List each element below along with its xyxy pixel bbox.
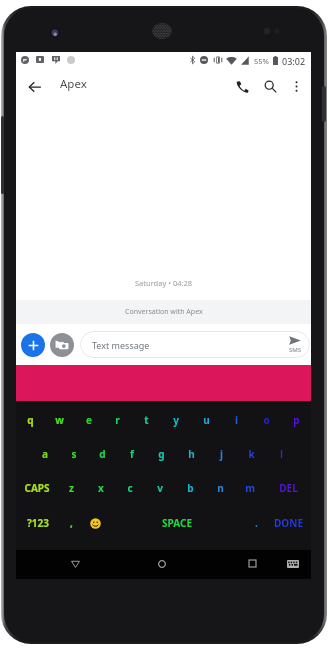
button[interactable]: . — [247, 506, 265, 540]
button[interactable]: e — [74, 403, 103, 437]
button[interactable]: Emoji — [83, 506, 107, 540]
button[interactable]: Back — [54, 550, 96, 579]
button[interactable]: w — [45, 403, 74, 437]
button[interactable]: a — [30, 437, 59, 471]
button[interactable]: DONE — [265, 506, 311, 540]
staticText: CAPS — [24, 481, 50, 495]
staticText: o — [263, 413, 270, 427]
button[interactable]: q — [16, 403, 45, 437]
staticText: h — [188, 447, 195, 461]
button[interactable]: , — [59, 506, 83, 540]
staticText: z — [69, 481, 74, 495]
button[interactable]: v — [145, 471, 175, 505]
button[interactable]: Add attachment — [21, 333, 45, 357]
staticText: , — [70, 516, 73, 530]
button[interactable]: ?123 — [16, 506, 59, 540]
staticText: b — [187, 481, 194, 495]
staticText: 55% — [254, 56, 269, 66]
button[interactable]: j — [206, 437, 236, 471]
staticText: j — [220, 447, 223, 461]
button[interactable]: n — [205, 471, 235, 505]
staticText: e — [86, 413, 92, 427]
button[interactable]: z — [57, 471, 86, 505]
staticText: f — [130, 447, 134, 461]
button[interactable]: DEL — [265, 471, 311, 505]
staticText: r — [115, 413, 120, 427]
staticText: Conversation with Apex — [125, 307, 203, 317]
button[interactable]: d — [88, 437, 117, 471]
button[interactable]: y — [161, 403, 191, 437]
staticText: SMS — [289, 346, 302, 354]
staticText: m — [245, 481, 255, 495]
staticText: i — [235, 413, 238, 427]
staticText: t — [144, 413, 149, 427]
button[interactable]: SPACE — [107, 506, 247, 540]
button[interactable]: More options — [283, 73, 310, 100]
staticText: Saturday • 04:28 — [135, 278, 193, 288]
button[interactable]: i — [221, 403, 251, 437]
staticText: y — [173, 413, 179, 427]
staticText: l — [280, 447, 283, 461]
staticText: DEL — [279, 481, 298, 495]
staticText: s — [71, 447, 77, 461]
button[interactable]: o — [251, 403, 281, 437]
button[interactable]: c — [115, 471, 145, 505]
button[interactable]: Navigate up — [21, 73, 48, 100]
button[interactable]: f — [117, 437, 146, 471]
staticText: u — [203, 413, 210, 427]
button[interactable]: m — [235, 471, 265, 505]
staticText: n — [217, 481, 224, 495]
button[interactable]: CAPS — [16, 471, 57, 505]
button[interactable]: Text message — [80, 331, 310, 358]
button[interactable]: u — [191, 403, 221, 437]
staticText: a — [42, 447, 48, 461]
staticText: SPACE — [162, 516, 192, 530]
button[interactable]: t — [132, 403, 161, 437]
staticText: . — [255, 516, 258, 530]
button[interactable]: k — [236, 437, 266, 471]
staticText: ?123 — [27, 516, 49, 530]
staticText: x — [98, 481, 104, 495]
button[interactable]: x — [86, 471, 115, 505]
button[interactable]: Home — [141, 550, 183, 579]
button[interactable]: Send SMS — [285, 332, 305, 358]
button[interactable]: p — [281, 403, 311, 437]
button[interactable]: Search — [257, 73, 284, 100]
button[interactable]: l — [266, 437, 296, 471]
staticText: Apex — [60, 76, 87, 92]
button[interactable]: Hide keyboard — [278, 550, 307, 579]
button[interactable]: Take photo — [50, 333, 74, 357]
button[interactable]: b — [175, 471, 205, 505]
button[interactable]: Recent apps — [231, 550, 273, 579]
staticText: p — [293, 413, 300, 427]
staticText: q — [27, 413, 34, 427]
staticText: 03:02 — [282, 55, 306, 67]
button[interactable]: h — [176, 437, 206, 471]
staticText: g — [158, 447, 165, 461]
staticText: c — [127, 481, 133, 495]
staticText: w — [55, 413, 64, 427]
button[interactable]: s — [59, 437, 88, 471]
button[interactable]: r — [103, 403, 132, 437]
staticText: Text message — [92, 339, 150, 351]
button[interactable]: Call — [229, 73, 256, 100]
staticText: DONE — [274, 516, 303, 530]
button[interactable]: g — [146, 437, 176, 471]
staticText: v — [157, 481, 163, 495]
staticText: k — [248, 447, 255, 461]
staticText: d — [99, 447, 106, 461]
